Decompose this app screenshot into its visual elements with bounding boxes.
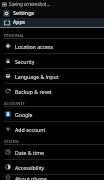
button[interactable]: Accessibility bbox=[0, 160, 104, 174]
staticText: SYSTEM bbox=[4, 139, 19, 144]
button[interactable]: Settings bbox=[0, 8, 104, 18]
staticText: Add account bbox=[15, 126, 46, 133]
button[interactable]: Location access bbox=[0, 39, 104, 53]
staticText: Apps bbox=[13, 19, 25, 26]
button[interactable]: Google bbox=[0, 107, 104, 121]
staticText: Date & time bbox=[15, 149, 44, 156]
button[interactable]: Backup & reset bbox=[0, 84, 104, 98]
button[interactable]: About phone bbox=[0, 175, 104, 180]
staticText: Language & input bbox=[15, 73, 59, 80]
staticText: Backup & reset bbox=[15, 88, 52, 95]
button[interactable]: Security bbox=[0, 54, 104, 68]
staticText: Saving screenshot... bbox=[9, 1, 50, 7]
button[interactable]: Apps bbox=[0, 18, 104, 28]
staticText: Security bbox=[15, 58, 35, 65]
button[interactable]: Language & input bbox=[0, 69, 104, 83]
staticText: About phone bbox=[15, 175, 47, 180]
staticText: Location access bbox=[15, 43, 53, 50]
staticText: Google bbox=[15, 111, 33, 118]
staticText: PERSONAL bbox=[4, 33, 24, 38]
staticText: Accessibility bbox=[15, 164, 45, 171]
button[interactable]: Date & time bbox=[0, 145, 104, 159]
button[interactable]: Add account bbox=[0, 122, 104, 136]
staticText: ACCOUNTS bbox=[4, 101, 25, 106]
staticText: Settings bbox=[13, 9, 35, 17]
